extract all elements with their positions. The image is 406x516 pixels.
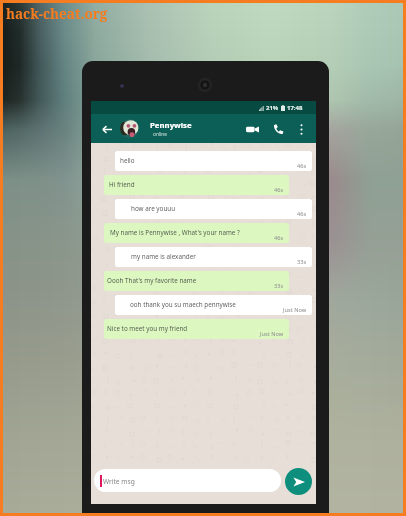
button[interactable]: how are youuu (115, 199, 312, 219)
staticText: 33s (274, 282, 284, 290)
staticText: ooh thank you su maech pennywise (130, 300, 236, 309)
button[interactable]: Call (268, 119, 288, 139)
staticText: 33s (297, 258, 307, 266)
button[interactable]: Back (96, 118, 118, 140)
staticText: Just Now (260, 330, 284, 338)
button[interactable]: Oooh That's my favorite name (104, 271, 289, 291)
staticText: 46s (274, 186, 284, 194)
staticText: Oooh That's my favorite name (107, 276, 197, 285)
button[interactable]: Nice to meet you my friend (104, 319, 289, 339)
button[interactable]: Video call (242, 119, 262, 139)
staticText: 46s (274, 234, 284, 242)
staticText: Pennywise (150, 120, 192, 131)
staticText: Just Now (283, 306, 307, 314)
button[interactable]: hello (115, 151, 312, 171)
staticText: hello (120, 156, 135, 165)
staticText: 46s (297, 162, 307, 170)
staticText: 46s (297, 210, 307, 218)
staticText: Nice to meet you my friend (107, 324, 188, 333)
staticText: Write msg (103, 477, 135, 486)
button[interactable]: More options (291, 119, 311, 139)
button[interactable]: ooh thank you su maech pennywise (115, 295, 312, 315)
button[interactable]: Hi friend (104, 175, 289, 195)
staticText: 21% (266, 104, 279, 112)
button[interactable]: My name is Pennywise , What's your name … (104, 223, 289, 243)
staticText: 17:48 (287, 104, 303, 112)
staticText: how are youuu (131, 204, 176, 213)
staticText: my name is alexander (131, 252, 196, 261)
button[interactable]: Write msg (94, 469, 281, 492)
staticText: Hi friend (109, 180, 135, 189)
staticText: hack-cheat.org (6, 5, 108, 23)
button[interactable]: my name is alexander (115, 247, 312, 267)
button[interactable]: Send (285, 468, 312, 495)
staticText: online (153, 131, 168, 138)
staticText: My name is Pennywise , What's your name … (110, 228, 240, 237)
